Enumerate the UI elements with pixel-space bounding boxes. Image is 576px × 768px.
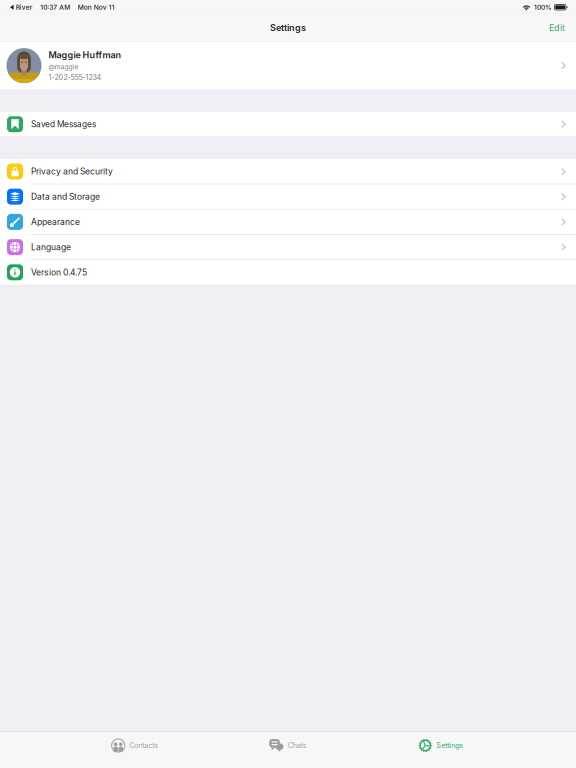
button[interactable]: Contacts [112, 732, 158, 759]
button[interactable]: Settings [419, 732, 463, 759]
staticText: Privacy and Security [31, 166, 113, 177]
staticText: Edit [549, 22, 565, 33]
button[interactable]: Data and Storage [0, 184, 576, 209]
button[interactable]: Chats [269, 732, 307, 759]
staticText: Version 0.4.75 [31, 267, 87, 277]
staticText: River [16, 3, 33, 11]
button[interactable]: Maggie Huffman [0, 42, 576, 90]
button[interactable]: Appearance [0, 210, 576, 234]
staticText: 100% [534, 3, 552, 11]
button[interactable]: Edit [549, 16, 576, 39]
staticText: 10:37 AM [40, 3, 70, 11]
staticText: Contacts [129, 741, 158, 750]
staticText: 1-202-555-1234 [48, 73, 101, 82]
staticText: Chats [288, 741, 307, 750]
button[interactable]: Privacy and Security [0, 159, 576, 184]
button[interactable]: Language [0, 235, 576, 259]
button[interactable]: Version 0.4.75 [0, 260, 576, 285]
staticText: Language [31, 242, 71, 252]
staticText: Appearance [31, 217, 80, 227]
staticText: Saved Messages [31, 119, 96, 129]
staticText: Settings [436, 741, 463, 750]
button[interactable]: Saved Messages [0, 112, 576, 136]
staticText: Maggie Huffman [48, 49, 121, 60]
staticText: Mon Nov 11 [78, 3, 115, 11]
staticText: Data and Storage [31, 191, 100, 202]
staticText: Settings [270, 22, 306, 33]
staticText: @maggie [48, 63, 78, 71]
